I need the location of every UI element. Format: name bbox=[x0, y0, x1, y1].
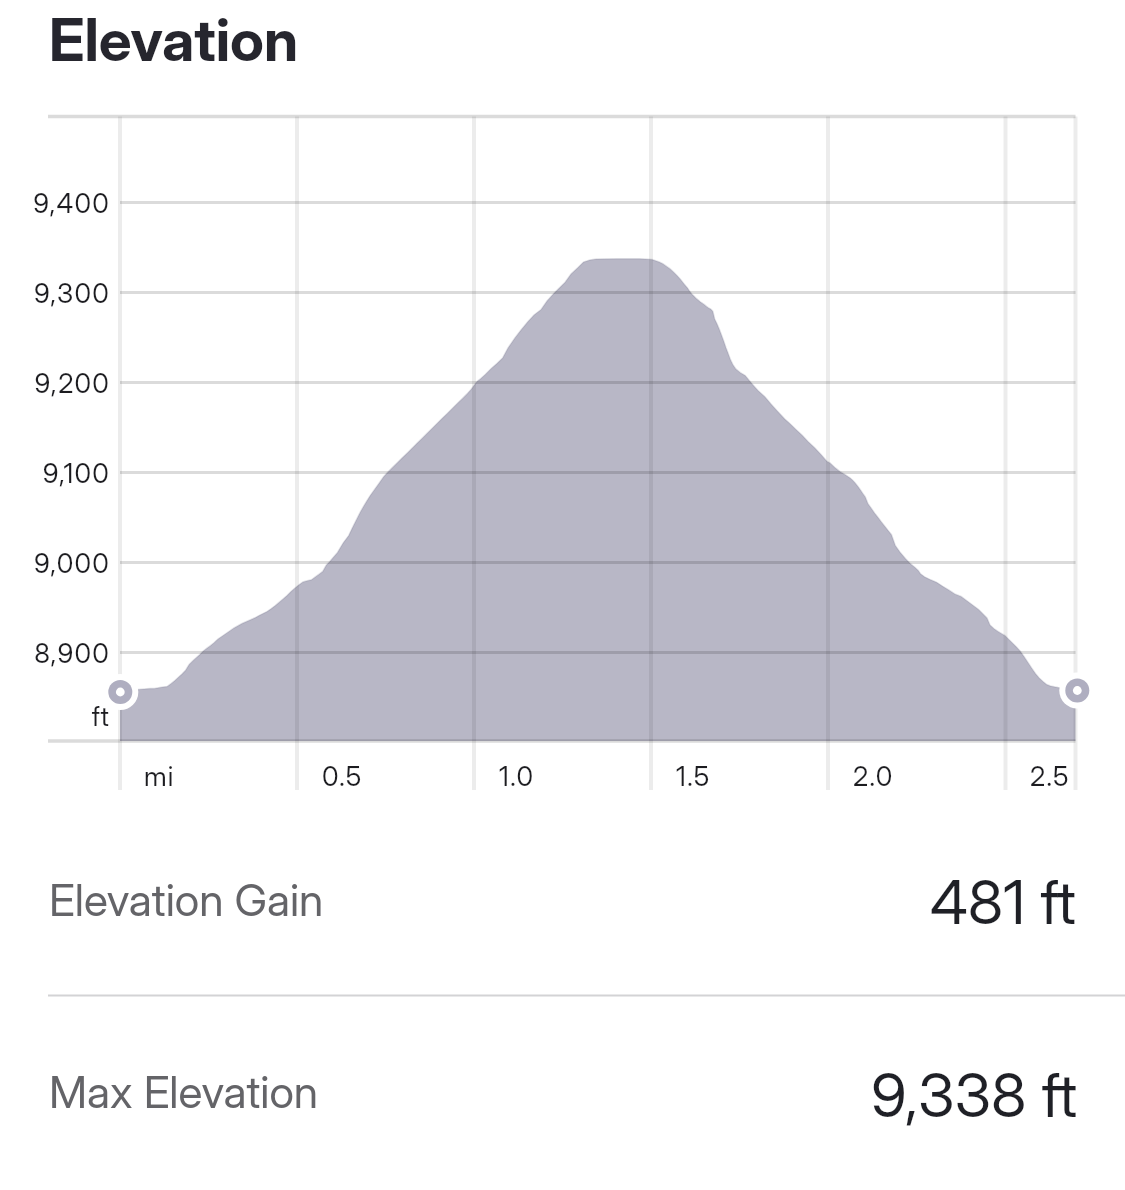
staticText: 9,200 bbox=[0, 367, 110, 400]
staticText: Elevation bbox=[49, 4, 299, 75]
staticText: 2.5 bbox=[1030, 760, 1070, 793]
staticText: 1.5 bbox=[676, 760, 711, 793]
staticText: 9,338 ft bbox=[871, 1058, 1078, 1132]
button[interactable]: Elevation Gain bbox=[0, 847, 1125, 995]
button[interactable]: Max Elevation bbox=[0, 995, 1125, 1190]
staticText: 9,300 bbox=[0, 277, 110, 310]
staticText: 1.0 bbox=[499, 760, 535, 793]
staticText: 481 ft bbox=[930, 865, 1077, 939]
staticText: 2.0 bbox=[853, 760, 894, 793]
staticText: ft bbox=[0, 700, 110, 733]
staticText: Elevation Gain bbox=[49, 873, 324, 927]
staticText: 8,900 bbox=[0, 637, 110, 670]
staticText: 0.5 bbox=[322, 760, 363, 793]
staticText: Max Elevation bbox=[49, 1065, 319, 1119]
other: Elevation profile chart bbox=[0, 0, 1125, 1190]
staticText: 9,000 bbox=[0, 547, 110, 580]
staticText: 9,400 bbox=[0, 187, 110, 220]
staticText: mi bbox=[144, 760, 175, 793]
staticText: 9,100 bbox=[0, 457, 110, 490]
